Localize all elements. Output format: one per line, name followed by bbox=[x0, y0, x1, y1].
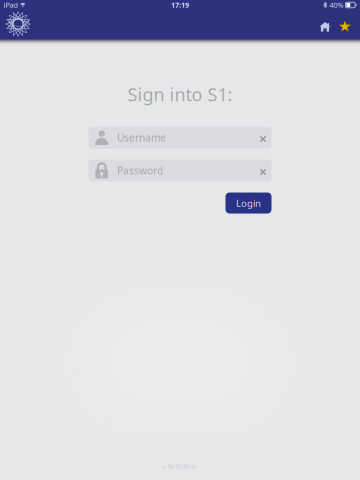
button[interactable]: Favorites bbox=[335, 10, 355, 38]
staticText: v 16.07.01.61 bbox=[162, 462, 197, 470]
staticText: 17:19 bbox=[171, 0, 189, 10]
button[interactable]: Login bbox=[225, 192, 271, 213]
button[interactable]: Home bbox=[315, 10, 335, 38]
staticText: 40% bbox=[329, 0, 343, 10]
staticText: Username bbox=[117, 131, 166, 144]
staticText: Login bbox=[236, 196, 261, 210]
staticText: Sign into S1: bbox=[127, 82, 232, 106]
button[interactable]: Clear Username bbox=[255, 126, 270, 148]
staticText: Password bbox=[117, 164, 163, 177]
staticText: iPad bbox=[3, 0, 17, 10]
button[interactable]: Clear Password bbox=[255, 159, 270, 181]
